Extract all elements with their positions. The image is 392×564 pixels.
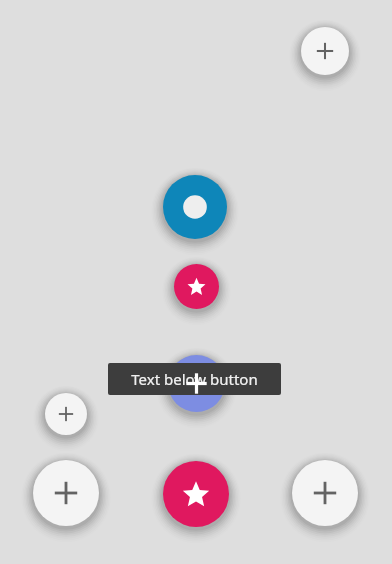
button[interactable]: Record xyxy=(160,172,230,242)
button[interactable]: Add xyxy=(298,24,352,78)
button[interactable]: Add small xyxy=(42,390,90,438)
staticText: Text below button xyxy=(131,369,258,389)
button[interactable]: Add right xyxy=(289,457,361,529)
button[interactable]: Add item xyxy=(165,352,228,415)
button[interactable]: Favorite xyxy=(171,261,222,312)
button[interactable]: Favorite large xyxy=(160,458,232,530)
button[interactable]: Add left xyxy=(30,457,102,529)
